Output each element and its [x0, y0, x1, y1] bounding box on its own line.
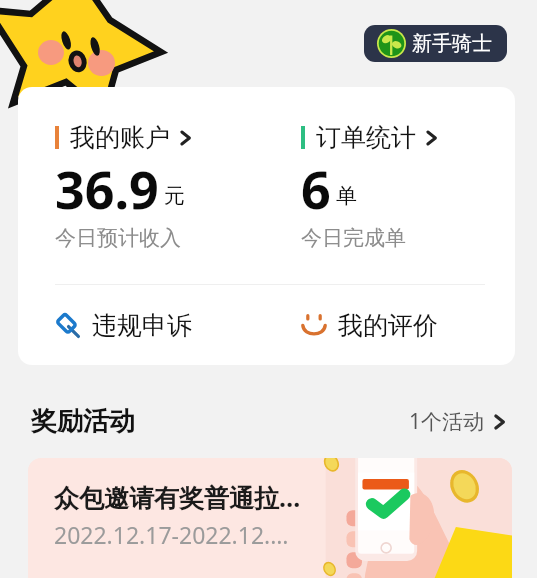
staticText: 36.9	[55, 153, 159, 224]
staticText: 新手骑士	[412, 31, 492, 56]
button[interactable]: 我的账户	[55, 122, 266, 251]
staticText: 我的账户	[70, 122, 170, 153]
staticText: 订单统计	[316, 122, 416, 153]
button[interactable]: 众包邀请有奖普通拉…	[28, 458, 512, 578]
staticText: 单	[336, 183, 357, 209]
button[interactable]: 订单统计	[301, 122, 515, 251]
staticText: 元	[164, 183, 185, 209]
staticText: 今日预计收入	[55, 225, 181, 251]
button[interactable]: 违规申诉	[18, 285, 266, 365]
staticText: 违规申诉	[92, 310, 192, 341]
button[interactable]: 新手骑士	[364, 25, 507, 62]
button[interactable]: 我的评价	[266, 285, 515, 365]
staticText: 2022.12.17-2022.12.…	[54, 519, 289, 550]
staticText: 我的评价	[338, 310, 438, 341]
staticText: 奖励活动	[31, 405, 135, 438]
staticText: 众包邀请有奖普通拉…	[54, 480, 301, 514]
button[interactable]: 1个活动	[409, 407, 506, 436]
staticText: 6	[301, 153, 331, 224]
staticText: 今日完成单	[301, 225, 406, 251]
staticText: 1个活动	[409, 407, 485, 436]
